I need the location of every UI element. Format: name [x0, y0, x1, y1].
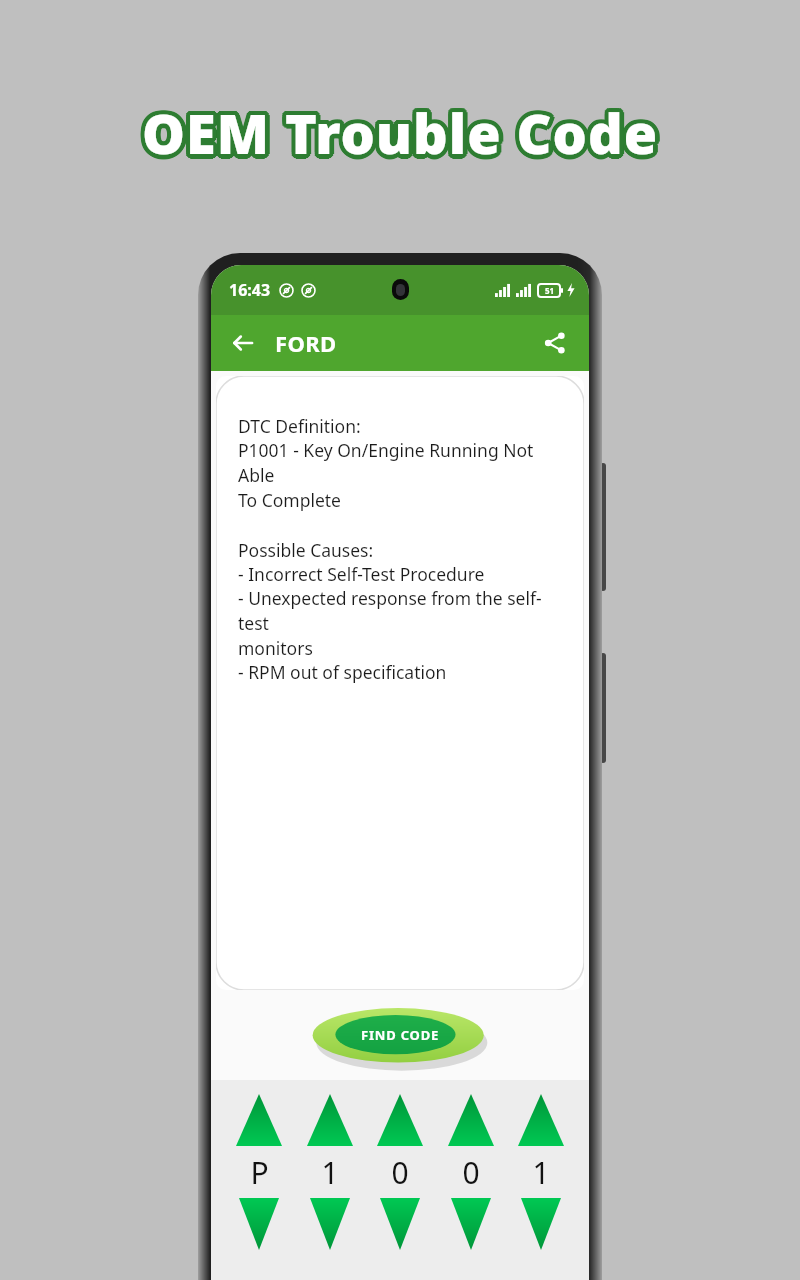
staticText: OEM Trouble Code — [144, 92, 661, 166]
staticText: OEM Trouble Code — [138, 96, 655, 170]
staticText: monitors — [238, 636, 313, 660]
button[interactable]: Increase digit 1 — [235, 1092, 283, 1148]
staticText: FIND CODE — [361, 1026, 440, 1044]
button[interactable]: FIND CODE — [309, 1004, 491, 1072]
button[interactable]: Increase digit 3 — [376, 1092, 424, 1148]
button[interactable]: Increase digit 5 — [517, 1092, 565, 1148]
staticText: OEM Trouble Code — [142, 92, 659, 166]
staticText: 0 — [462, 1152, 480, 1193]
staticText: OEM Trouble Code — [142, 96, 659, 170]
button[interactable]: Share — [533, 321, 577, 365]
staticText: OEM Trouble Code — [138, 98, 655, 172]
button[interactable]: Increase digit 2 — [306, 1092, 354, 1148]
staticText: P1001 - Key On/Engine Running Not Able — [238, 438, 570, 488]
staticText: OEM Trouble Code — [145, 93, 662, 167]
staticText: 1 — [532, 1152, 550, 1193]
button[interactable]: Increase digit 4 — [447, 1092, 495, 1148]
button[interactable]: Back — [221, 321, 265, 365]
button[interactable]: Decrease digit 1 — [235, 1196, 283, 1252]
staticText: 1 — [321, 1152, 339, 1193]
staticText: OEM Trouble Code — [142, 101, 659, 175]
staticText: To Complete — [238, 488, 341, 512]
staticText: 51 — [545, 285, 555, 296]
staticText: OEM Trouble Code — [140, 92, 657, 166]
button[interactable]: Decrease digit 4 — [447, 1196, 495, 1252]
staticText: - Incorrect Self-Test Procedure — [238, 562, 485, 586]
staticText: OEM Trouble Code — [139, 99, 656, 173]
staticText: FORD — [275, 328, 337, 358]
staticText: Possible Causes: — [238, 538, 374, 562]
button[interactable]: Decrease digit 5 — [517, 1196, 565, 1252]
staticText: - RPM out of specification — [238, 660, 447, 684]
staticText: 0 — [391, 1152, 409, 1193]
staticText: OEM Trouble Code — [147, 96, 664, 170]
staticText: OEM Trouble Code — [138, 94, 655, 168]
staticText: 16:43 — [229, 279, 271, 301]
staticText: OEM Trouble Code — [145, 99, 662, 173]
staticText: OEM Trouble Code — [146, 94, 663, 168]
button[interactable]: Decrease digit 3 — [376, 1196, 424, 1252]
staticText: OEM Trouble Code — [146, 98, 663, 172]
staticText: OEM Trouble Code — [144, 100, 661, 174]
staticText: OEM Trouble Code — [140, 100, 657, 174]
staticText: DTC Definition: — [238, 414, 361, 438]
staticText: OEM Trouble Code — [139, 93, 656, 167]
staticText: - Unexpected response from the self-test — [238, 586, 570, 636]
staticText: P — [250, 1152, 269, 1193]
button[interactable]: Decrease digit 2 — [306, 1196, 354, 1252]
